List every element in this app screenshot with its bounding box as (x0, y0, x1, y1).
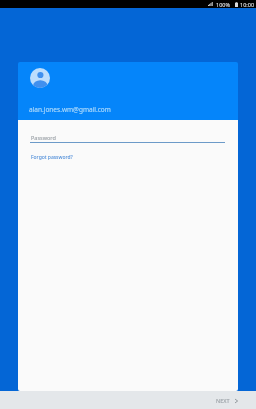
staticText: NEXT (216, 397, 230, 404)
staticText: 100% (216, 1, 231, 8)
staticText: alan.jones.wm@gmail.com (29, 105, 111, 114)
staticText: Password (31, 134, 56, 141)
button[interactable]: NEXT (206, 393, 256, 408)
staticText: 10:00 (240, 1, 255, 8)
button[interactable]: Forgot password? (31, 154, 73, 161)
